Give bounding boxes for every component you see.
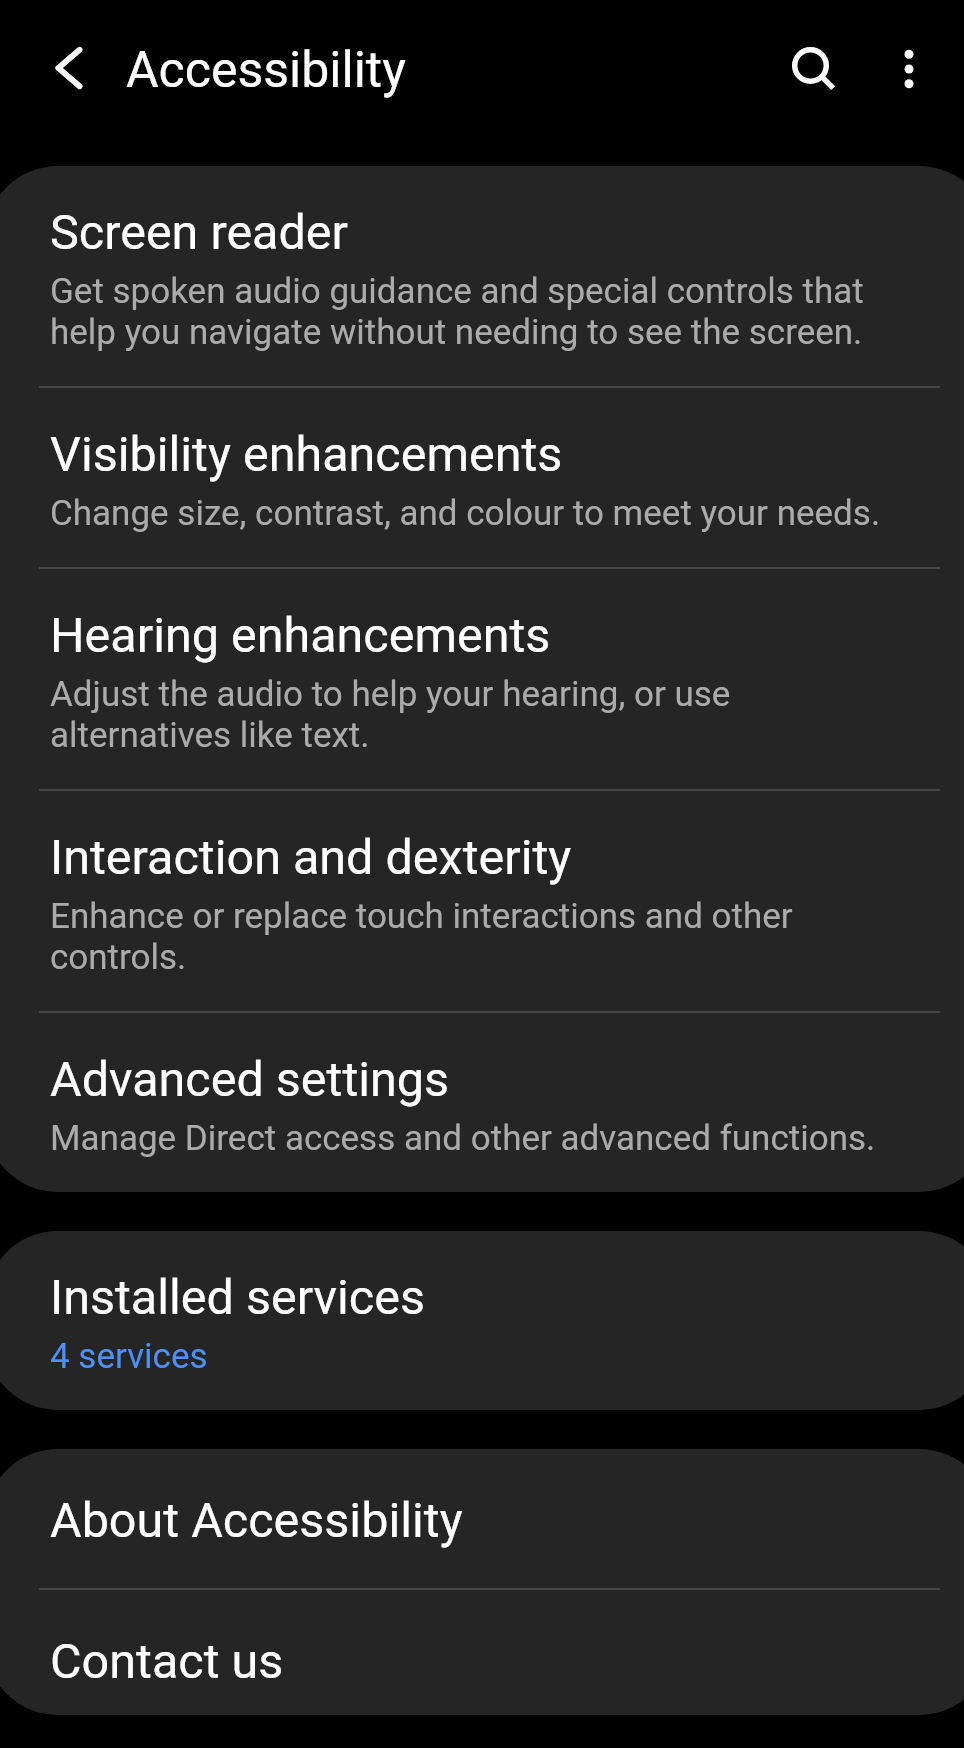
staticText: 4 services [50,1336,208,1377]
staticText: Change size, contrast, and colour to mee… [50,493,881,534]
button[interactable]: Interaction and dexterity [0,791,964,1011]
staticText: Interaction and dexterity [50,829,572,886]
staticText: Installed services [50,1269,425,1326]
staticText: About Accessibility [50,1492,463,1549]
button[interactable]: More options [859,18,959,118]
staticText: Hearing enhancements [50,607,551,664]
staticText: Advanced settings [50,1051,450,1108]
staticText: Accessibility [126,41,406,100]
staticText: Contact us [50,1633,284,1690]
staticText: Visibility enhancements [50,426,563,483]
staticText: Screen reader [50,204,349,261]
button[interactable]: Contact us [0,1590,964,1715]
staticText: Enhance or replace touch interactions an… [50,896,793,978]
button[interactable]: Screen reader [0,166,964,386]
staticText: Get spoken audio guidance and special co… [50,271,864,353]
button[interactable]: Hearing enhancements [0,569,964,789]
button[interactable]: Visibility enhancements [0,388,964,567]
button[interactable]: Navigate up [14,13,124,123]
button[interactable]: Advanced settings [0,1013,964,1192]
staticText: Manage Direct access and other advanced … [50,1118,876,1159]
button[interactable]: Installed services [0,1231,964,1410]
button[interactable]: About Accessibility [0,1449,964,1588]
button[interactable]: Search [761,18,861,118]
staticText: Adjust the audio to help your hearing, o… [50,674,731,756]
